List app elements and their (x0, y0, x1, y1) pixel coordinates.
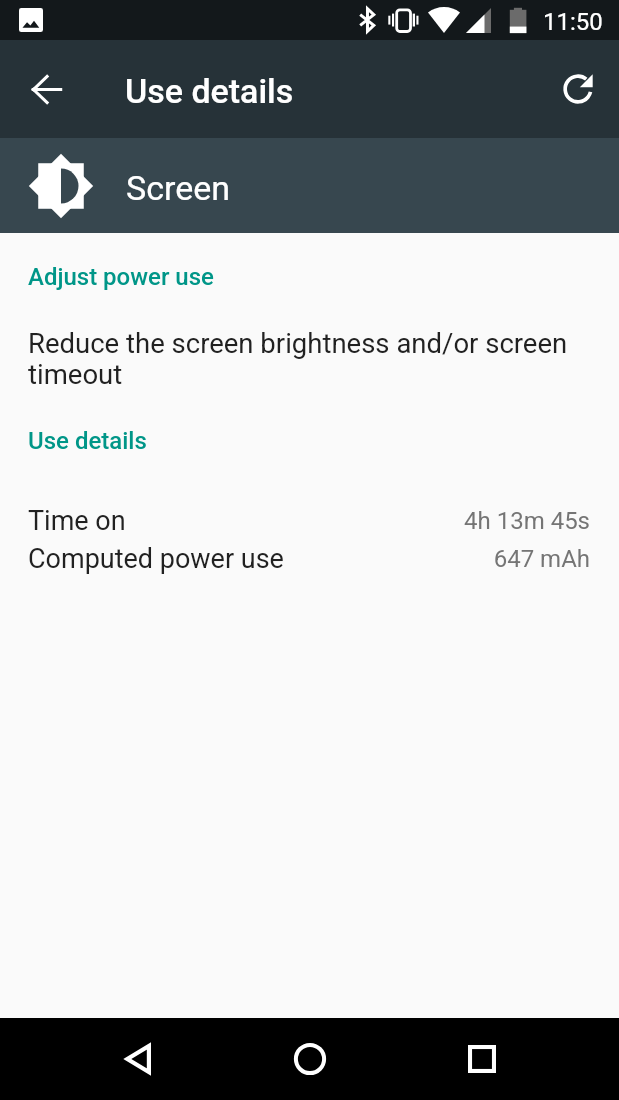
button[interactable]: Home (264, 1018, 355, 1100)
staticText: Use details (125, 71, 294, 111)
button[interactable]: Back (10, 53, 82, 125)
staticText: 4h 13m 45s (464, 507, 590, 535)
button[interactable]: Time on (0, 502, 619, 540)
button[interactable]: Computed power use (0, 540, 619, 578)
staticText: Time on (28, 505, 126, 537)
staticText: Use details (28, 427, 147, 455)
button[interactable]: Back (92, 1018, 183, 1100)
staticText: Computed power use (28, 543, 284, 575)
button[interactable]: Recent apps (436, 1018, 527, 1100)
staticText: 11:50 (543, 8, 603, 36)
button[interactable]: Refresh (542, 53, 614, 125)
staticText: 647 mAh (493, 545, 590, 573)
staticText: Adjust power use (28, 263, 214, 291)
staticText: Screen (126, 168, 231, 208)
staticText: Reduce the screen brightness and/or scre… (28, 327, 579, 391)
